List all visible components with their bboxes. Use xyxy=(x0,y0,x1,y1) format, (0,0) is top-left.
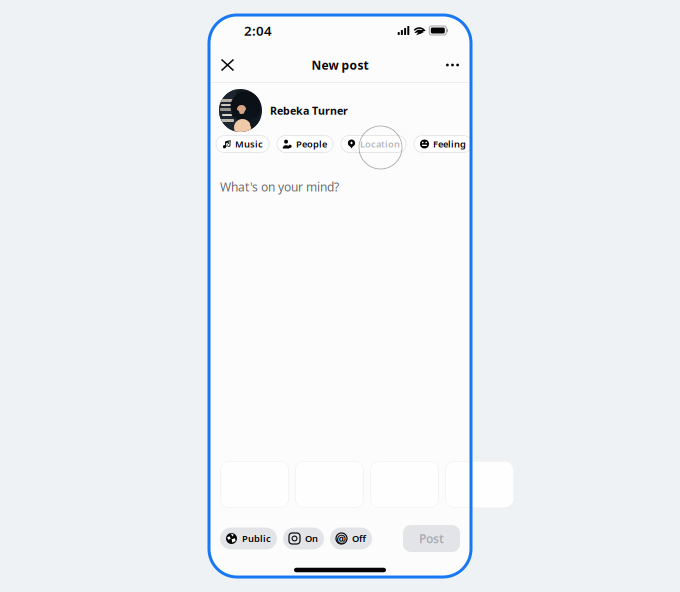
button[interactable]: More options xyxy=(438,51,466,79)
button[interactable]: People xyxy=(277,135,333,152)
staticText: Public xyxy=(242,532,271,545)
staticText: What's on your mind? xyxy=(220,179,339,195)
staticText: 2:04 xyxy=(244,22,272,39)
staticText: Post xyxy=(419,530,444,546)
button[interactable]: On xyxy=(283,527,324,549)
button[interactable]: Feeling xyxy=(414,135,472,152)
button[interactable]: Post xyxy=(403,525,460,552)
staticText: Feeling xyxy=(433,138,466,150)
button[interactable]: Public xyxy=(220,527,277,549)
button[interactable]: Music xyxy=(216,135,269,152)
staticText: Rebeka Turner xyxy=(270,103,348,118)
staticText: Off xyxy=(352,532,366,545)
staticText: People xyxy=(296,138,327,150)
button[interactable]: Close xyxy=(213,51,241,79)
staticText: On xyxy=(305,532,318,545)
button[interactable]: @ xyxy=(330,527,372,549)
staticText: New post xyxy=(311,57,368,73)
button[interactable] xyxy=(445,461,514,508)
staticText: Music xyxy=(235,138,263,150)
button[interactable]: Location xyxy=(341,135,406,152)
staticText: Location xyxy=(360,138,400,150)
staticText: @ xyxy=(336,531,346,546)
